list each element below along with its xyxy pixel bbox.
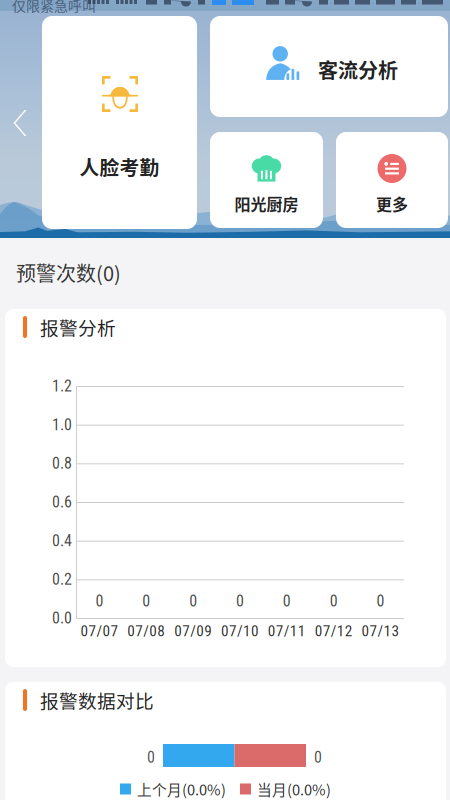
staticText: 0.0 xyxy=(52,609,72,627)
button[interactable]: 上一页 xyxy=(2,99,38,147)
staticText: 0.8 xyxy=(52,454,72,473)
staticText: 0 xyxy=(236,592,244,610)
staticText: 07/12 xyxy=(315,622,353,640)
staticText: 0 xyxy=(330,592,338,610)
staticText: 0 xyxy=(95,592,103,610)
staticText: 客流分析 xyxy=(318,55,398,84)
staticText: 1.2 xyxy=(52,377,72,395)
staticText: 预警次数(0) xyxy=(16,258,121,287)
staticText: 更多 xyxy=(376,192,408,215)
staticText: 07/11 xyxy=(268,622,306,640)
staticText: 阳光厨房 xyxy=(234,192,298,215)
staticText: 0 xyxy=(283,592,291,610)
staticText: 0.4 xyxy=(52,531,72,550)
staticText: 当月(0.0%) xyxy=(257,778,331,800)
staticText: 0.6 xyxy=(52,493,72,511)
staticText: 0 xyxy=(314,748,322,767)
staticText: 0.2 xyxy=(52,570,72,589)
staticText: 报警数据对比 xyxy=(40,686,154,713)
staticText: 07/08 xyxy=(127,622,165,640)
staticText: 0 xyxy=(377,592,385,610)
staticText: 仅限紧急呼叫 xyxy=(12,0,96,15)
staticText: 人脸考勤 xyxy=(79,152,159,181)
staticText: 07/09 xyxy=(174,622,212,640)
staticText: 1.0 xyxy=(52,415,72,434)
staticText: 报警分析 xyxy=(40,313,116,340)
staticText: 0 xyxy=(147,748,155,767)
staticText: 07/13 xyxy=(362,622,400,640)
staticText: 07/07 xyxy=(80,622,118,640)
button[interactable]: 客流分析 xyxy=(210,16,448,117)
staticText: 07/10 xyxy=(221,622,259,640)
staticText: 0 xyxy=(189,592,197,610)
staticText: 上个月(0.0%) xyxy=(137,778,226,800)
button[interactable]: 阳光厨房 xyxy=(210,132,323,228)
button[interactable]: 更多 xyxy=(336,132,448,228)
staticText: 0 xyxy=(142,592,150,610)
button[interactable]: 人脸考勤 xyxy=(42,16,197,229)
